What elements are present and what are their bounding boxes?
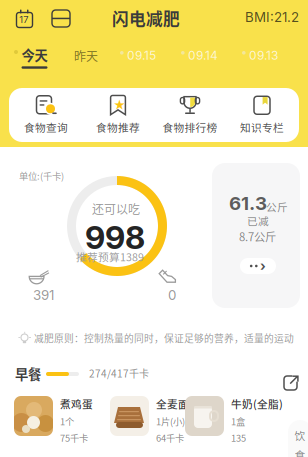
staticText: 食物推荐 [96,119,140,135]
staticText: 牛奶(全脂) [231,396,283,411]
staticText: 已减 [247,213,269,228]
button[interactable]: 煮鸡蛋 [14,396,112,440]
staticText: 今天 [21,45,47,64]
staticText: 0 [168,287,176,303]
button[interactable]: 09.14 [188,48,218,62]
button[interactable]: Weight details [240,258,276,274]
staticText: 09.13 [249,48,278,62]
staticText: 闪电减肥 [112,6,180,30]
staticText: 09.14 [188,48,218,62]
staticText: BMI:21.2 [245,9,299,25]
staticText: 早餐 [15,364,41,383]
staticText: 公斤 [266,199,288,214]
button[interactable]: Switch layout [52,10,70,27]
staticText: 煮鸡蛋 [60,396,93,411]
staticText: 还可以吃 [92,200,140,217]
button[interactable]: 昨天 [74,47,98,64]
staticText: 8.7公斤 [239,228,276,244]
button[interactable]: Share [283,375,299,391]
staticText: 知识专栏 [240,119,284,135]
button[interactable]: 食物查询 [10,88,82,142]
button[interactable]: 牛奶(全脂) [185,396,300,440]
staticText: › [260,258,266,274]
staticText: 64千卡 [156,431,184,444]
button[interactable]: 食物排行榜 [154,88,226,142]
staticText: 饮 [294,428,305,443]
staticText: ★ [113,98,126,112]
staticText: 1个 [60,414,74,428]
staticText: 61.3 [229,192,267,215]
staticText: 推荐预算1389 [76,249,144,264]
button[interactable]: 09.13 [249,48,278,62]
button[interactable]: 知识专栏 [226,88,298,142]
button[interactable]: 09.15 [127,48,156,62]
button[interactable]: ★ [82,88,154,142]
staticText: 274/417千卡 [89,366,149,380]
staticText: 全麦面包 [156,396,200,411]
button[interactable]: 全麦面包 [110,396,208,440]
staticText: 单位:(千卡) [19,169,64,182]
staticText: 17 [19,14,28,25]
staticText: 食 [294,447,305,457]
staticText: 391 [33,287,54,303]
staticText: 减肥原则：控制热量的同时，保证足够的营养，适量的运动 [34,331,294,345]
staticText: 1盒 [231,414,245,428]
staticText: 09.15 [127,48,156,62]
staticText: 1片(小) [156,414,185,428]
staticText: 食物排行榜 [162,119,217,135]
button[interactable]: 饮 [288,420,308,457]
staticText: 998 [85,218,145,257]
staticText: 135 [231,431,246,444]
staticText: 昨天 [74,47,98,64]
button[interactable]: 今天 [21,45,48,69]
button[interactable]: Calendar [16,9,33,28]
staticText: 75千卡 [60,431,88,444]
staticText: 食物查询 [24,119,68,135]
